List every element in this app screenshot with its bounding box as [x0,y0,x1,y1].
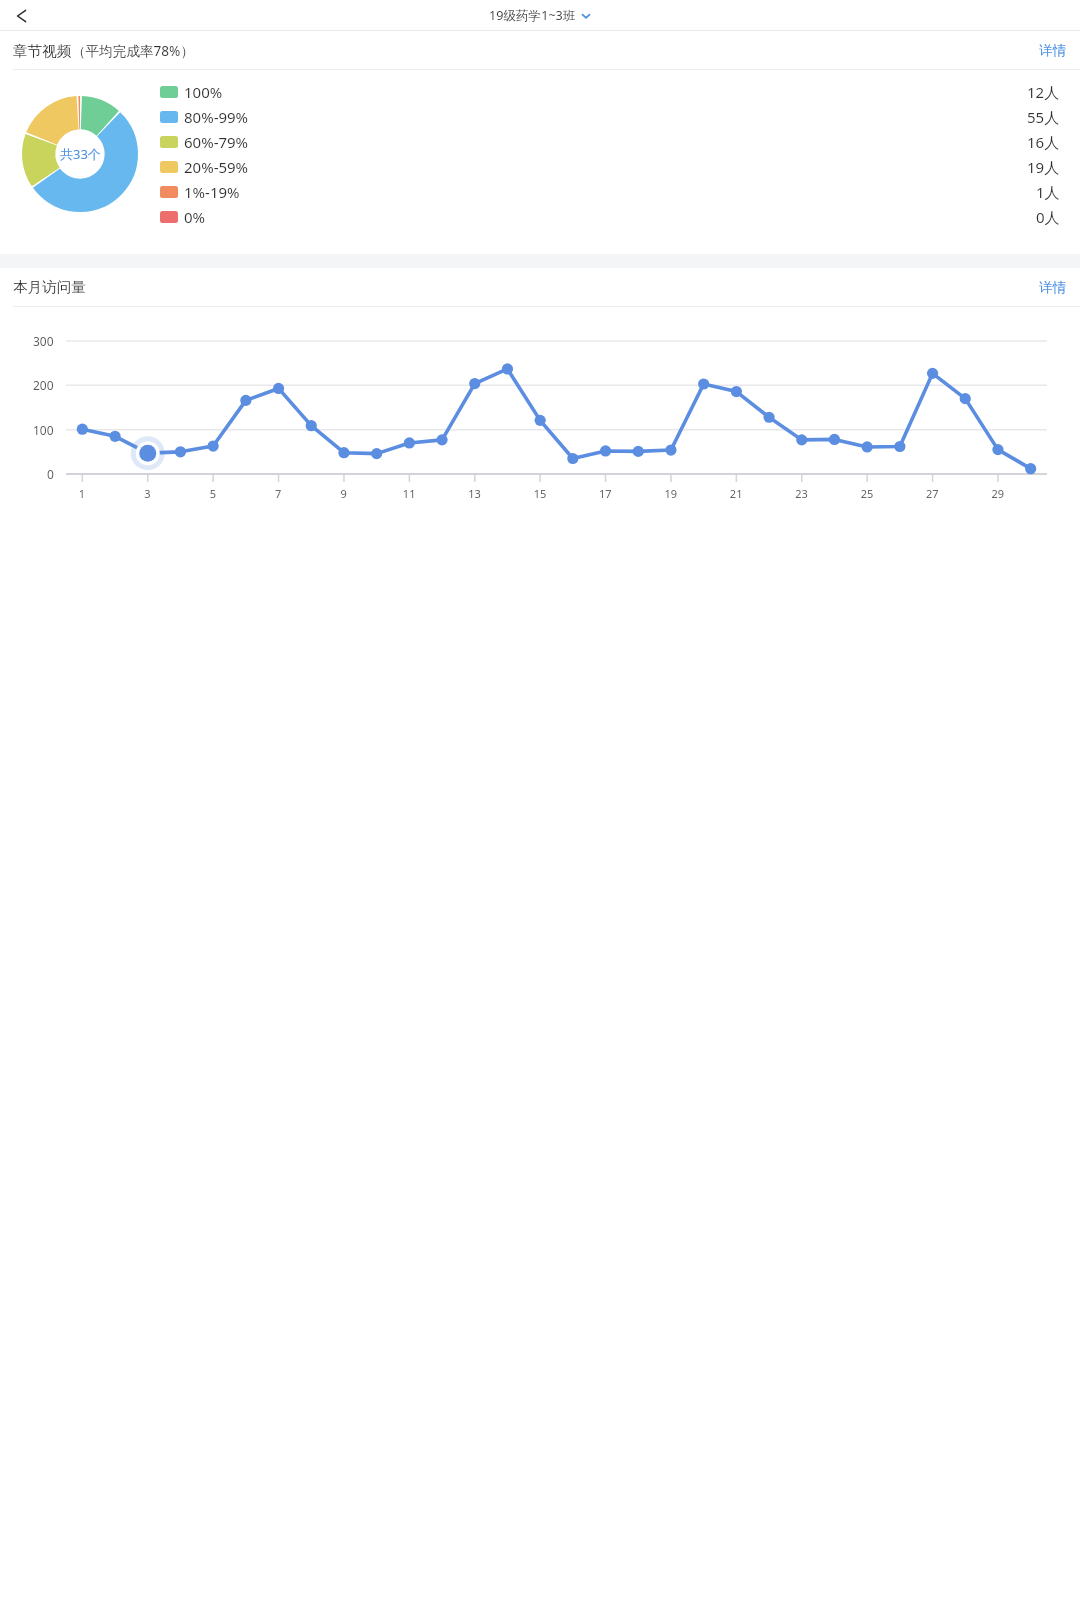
staticText: 详情 [1039,279,1067,296]
staticText: 80%-99% [184,107,249,127]
staticText: 共33个 [60,145,101,163]
button[interactable]: 19级药学1~3班 [489,7,591,24]
staticText: 0人 [1036,207,1060,227]
staticText: 100% [184,82,223,102]
staticText: 12人 [1027,82,1060,102]
button[interactable]: Back [4,1,34,31]
button[interactable]: 0% [160,204,1060,229]
button[interactable]: 100% [160,79,1060,104]
button[interactable]: 详情 [1039,42,1067,59]
button[interactable]: Monthly visits line chart [0,307,1080,1606]
staticText: 55人 [1027,107,1060,127]
button[interactable]: 80%-99% [160,104,1060,129]
button[interactable]: 1%-19% [160,179,1060,204]
button[interactable]: Video completion donut chart [22,96,138,212]
staticText: 章节视频 [13,42,72,60]
staticText: （平均完成率78%） [72,41,195,60]
staticText: 19级药学1~3班 [489,7,576,24]
staticText: 1%-19% [184,182,240,202]
staticText: 16人 [1027,132,1060,152]
staticText: 0% [184,207,206,227]
staticText: 60%-79% [184,132,249,152]
staticText: 详情 [1039,42,1067,59]
staticText: 19人 [1027,157,1060,177]
button[interactable]: 60%-79% [160,129,1060,154]
staticText: 1人 [1036,182,1060,202]
button[interactable]: 详情 [1039,279,1067,296]
staticText: 本月访问量 [13,278,86,296]
button[interactable]: 20%-59% [160,154,1060,179]
staticText: 20%-59% [184,157,249,177]
